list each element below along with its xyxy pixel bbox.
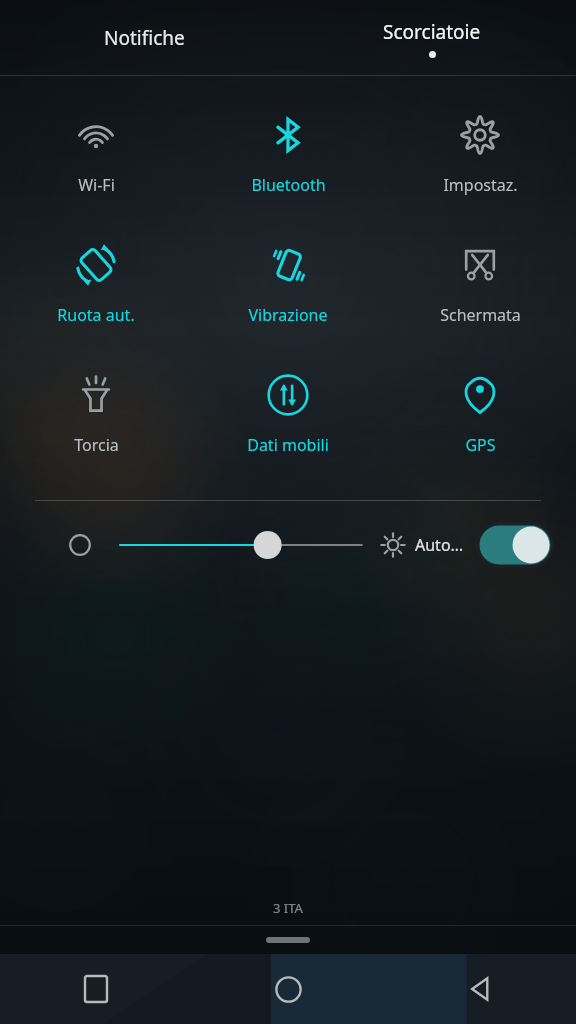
button[interactable]: Drag handle (0, 926, 576, 954)
button[interactable]: GPS (384, 366, 576, 462)
staticText: Auto… (415, 534, 464, 556)
button[interactable]: Ruota aut. (0, 236, 192, 332)
staticText: GPS (465, 434, 496, 456)
staticText: Dati mobili (247, 434, 329, 456)
button[interactable]: Home (192, 954, 384, 1024)
button[interactable]: Dati mobili (192, 366, 384, 462)
staticText: 3 ITA (273, 899, 303, 917)
staticText: Wi-Fi (78, 174, 115, 196)
button[interactable]: Scorciatoie (288, 0, 576, 76)
staticText: Torcia (74, 434, 119, 456)
button[interactable]: Notifiche (0, 0, 288, 76)
button[interactable]: Auto brightness toggle (476, 522, 554, 568)
button[interactable]: Schermata (384, 236, 576, 332)
button[interactable]: Vibrazione (192, 236, 384, 332)
button[interactable]: Torcia (0, 366, 192, 462)
staticText: Ruota aut. (57, 304, 135, 326)
staticText: Impostaz. (443, 174, 518, 196)
button[interactable]: Impostaz. (384, 106, 576, 202)
button[interactable]: Wi-Fi (0, 106, 192, 202)
button[interactable]: Auto… (380, 515, 464, 575)
button[interactable]: Bluetooth (192, 106, 384, 202)
staticText: Scorciatoie (383, 19, 481, 45)
button[interactable]: Brightness low (56, 521, 104, 569)
staticText: Vibrazione (248, 304, 328, 326)
button[interactable]: Brightness slider (120, 521, 362, 569)
staticText: Bluetooth (251, 174, 326, 196)
button[interactable]: Recents (0, 954, 192, 1024)
staticText: Schermata (440, 304, 521, 326)
button[interactable]: Back (384, 954, 576, 1024)
staticText: Notifiche (104, 25, 185, 51)
